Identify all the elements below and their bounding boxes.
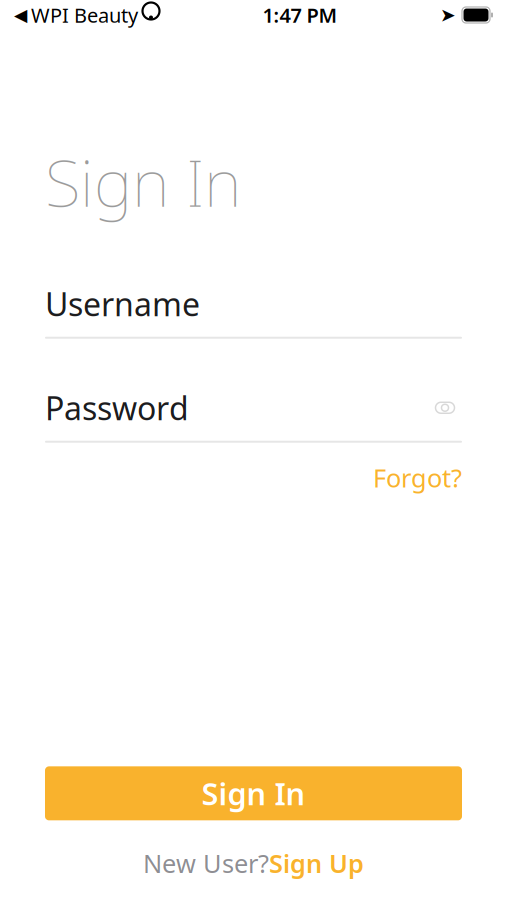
staticText: Password [45,386,189,429]
staticText: 1:47 PM [262,2,337,28]
button[interactable]: Sign In [45,766,462,820]
staticText: New User? [143,846,269,880]
staticText: Sign Up [269,846,364,880]
staticText: ◀ [14,5,27,25]
staticText: WPI Beauty [31,2,138,28]
staticText: Sign In [201,773,305,814]
staticText: Sign In [45,138,241,225]
staticText: ➤ [440,4,456,26]
button[interactable]: Show password [428,391,462,425]
button[interactable]: New User? [143,846,364,880]
button[interactable]: Forgot? [373,461,462,494]
staticText: Username [45,282,200,325]
staticText: Forgot? [373,461,462,494]
